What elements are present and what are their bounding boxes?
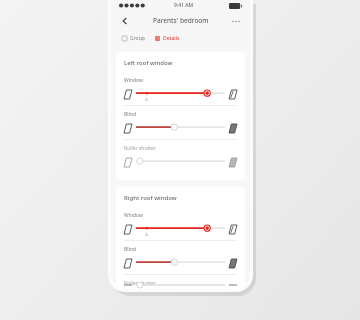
button[interactable]: Window: [116, 207, 245, 240]
button[interactable]: Group: [121, 33, 146, 44]
staticText: Group: [130, 35, 145, 42]
staticText: Blind: [124, 111, 136, 118]
button[interactable]: Roller shutter: [116, 140, 245, 173]
button[interactable]: More options: [229, 14, 243, 28]
button[interactable]: Blind: [116, 241, 245, 274]
button[interactable]: Roller shutter: [116, 275, 245, 289]
staticText: Blind: [124, 246, 136, 253]
staticText: Roller shutter: [124, 280, 156, 285]
button[interactable]: Window: [116, 72, 245, 105]
button[interactable]: Details: [154, 33, 181, 44]
staticText: Right roof window: [124, 194, 177, 202]
button[interactable]: Back: [118, 14, 132, 28]
staticText: Window: [124, 212, 143, 219]
staticText: Details: [163, 35, 180, 42]
staticText: Window: [124, 77, 143, 84]
staticText: 9:41 AM: [174, 2, 194, 9]
staticText: Parents' bedroom: [153, 16, 209, 25]
button[interactable]: Blind: [116, 106, 245, 139]
staticText: Roller shutter: [124, 145, 156, 152]
staticText: Left roof window: [124, 59, 173, 67]
